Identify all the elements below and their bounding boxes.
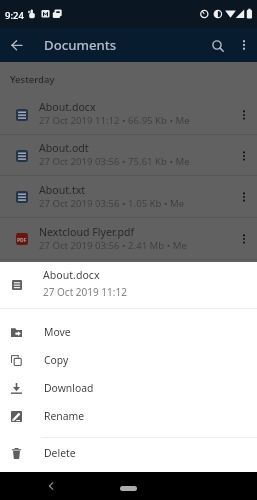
button[interactable]: About.docx — [0, 94, 257, 135]
button[interactable]: Item options — [231, 226, 257, 252]
staticText: Copy — [44, 353, 69, 367]
button[interactable]: About.odt — [0, 135, 257, 176]
button[interactable]: More options — [231, 32, 257, 58]
staticText: Yesterday — [10, 73, 55, 86]
button[interactable]: Item options — [231, 102, 257, 128]
button[interactable]: Move — [0, 318, 257, 346]
staticText: 27 Oct 2019 11:12 • 66.95 Kb • Me — [39, 114, 190, 127]
staticText: 27 Oct 2019 03:56 • 2.41 Mb • Me — [39, 239, 187, 252]
staticText: Nextcloud Flyer.pdf — [39, 225, 135, 239]
button[interactable]: Item options — [231, 184, 257, 210]
staticText: About.docx — [39, 100, 96, 114]
staticText: Download — [44, 381, 94, 395]
button[interactable]: Rename — [0, 402, 257, 430]
button[interactable]: PDF — [0, 218, 257, 260]
staticText: 27 Oct 2019 03:56 • 75.61 Kb • Me — [39, 155, 190, 168]
button[interactable]: Delete — [0, 439, 257, 467]
button[interactable]: Search — [201, 29, 234, 62]
staticText: About.txt — [39, 183, 86, 197]
staticText: Move — [44, 325, 71, 339]
button[interactable]: Download — [0, 374, 257, 402]
staticText: 27 Oct 2019 03:56 • 1.05 Kb • Me — [39, 197, 185, 210]
staticText: 27 Oct 2019 11:12 — [43, 285, 127, 299]
staticText: Rename — [44, 409, 85, 423]
button[interactable]: Back — [38, 473, 64, 499]
button[interactable]: Item options — [231, 143, 257, 169]
staticText: About.odt — [39, 141, 89, 155]
staticText: PDF — [17, 237, 27, 244]
button[interactable]: Copy — [0, 346, 257, 374]
staticText: 9:24 — [5, 9, 24, 22]
button[interactable]: Back — [1, 29, 33, 61]
button[interactable]: About.txt — [0, 176, 257, 218]
button[interactable]: Home — [120, 486, 137, 491]
staticText: Documents — [44, 36, 117, 54]
staticText: About.docx — [43, 268, 100, 282]
staticText: Delete — [44, 446, 76, 460]
